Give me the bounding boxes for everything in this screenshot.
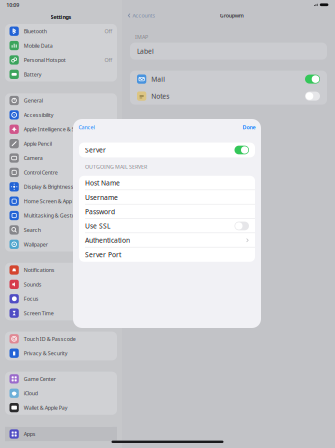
staticText: Camera bbox=[24, 154, 43, 162]
staticText: Username bbox=[85, 193, 118, 202]
staticText: Mobile Data bbox=[24, 42, 53, 49]
staticText: Touch ID & Passcode bbox=[24, 335, 76, 342]
button[interactable]: Multitasking & Gestures bbox=[5, 208, 117, 223]
button[interactable]: Personal Hotspot bbox=[5, 53, 117, 67]
button[interactable]: Touch ID & Passcode bbox=[5, 332, 117, 346]
staticText: Label bbox=[137, 47, 154, 56]
staticText: Focus bbox=[24, 295, 39, 302]
staticText: IMAP bbox=[135, 33, 148, 40]
staticText: Wallet & Apple Pay bbox=[24, 404, 68, 411]
button[interactable]: Notifications bbox=[5, 263, 117, 277]
staticText: Accounts bbox=[132, 12, 155, 19]
staticText: General bbox=[24, 97, 43, 104]
button[interactable]: Sounds bbox=[5, 277, 117, 292]
button[interactable]: Authentication bbox=[79, 233, 255, 247]
staticText: Wallpaper bbox=[24, 241, 48, 248]
button[interactable]: Bluetooth bbox=[5, 24, 117, 38]
button[interactable]: General bbox=[5, 93, 117, 108]
staticText: Mail bbox=[151, 75, 165, 84]
staticText: Password bbox=[85, 207, 115, 216]
staticText: iCloud bbox=[24, 390, 38, 397]
staticText: Privacy & Security bbox=[24, 350, 68, 357]
button[interactable]: Password bbox=[79, 204, 255, 219]
button[interactable]: Apple Pencil bbox=[5, 136, 117, 151]
button[interactable]: Focus bbox=[5, 292, 117, 306]
staticText: Personal Hotspot bbox=[24, 56, 66, 63]
staticText: Off bbox=[104, 56, 112, 63]
button[interactable]: Home Screen & App Library bbox=[5, 194, 117, 208]
button[interactable]: Screen Time bbox=[5, 306, 117, 320]
staticText: Notes bbox=[151, 92, 169, 101]
button[interactable]: Apple Intelligence & Siri bbox=[5, 122, 117, 136]
staticText: OUTGOING MAIL SERVER bbox=[85, 163, 147, 170]
staticText: Settings bbox=[50, 13, 71, 21]
button[interactable]: Game Center bbox=[5, 372, 117, 386]
staticText: Search bbox=[24, 226, 41, 233]
staticText: Multitasking & Gestures bbox=[24, 212, 83, 219]
staticText: Bluetooth bbox=[24, 28, 47, 35]
button[interactable]: Server bbox=[79, 143, 255, 157]
staticText: Home Screen & App Library bbox=[24, 198, 90, 205]
staticText: Battery bbox=[24, 71, 42, 78]
staticText: Accessibility bbox=[24, 111, 54, 118]
staticText: Screen Time bbox=[24, 310, 54, 317]
button[interactable]: Use SSL bbox=[79, 219, 255, 233]
staticText: Sounds bbox=[24, 281, 42, 288]
button[interactable]: Username bbox=[79, 190, 255, 204]
staticText: Apple Intelligence & Siri bbox=[24, 126, 79, 133]
staticText: Display & Brightness bbox=[24, 183, 74, 190]
staticText: Use SSL bbox=[85, 221, 110, 230]
staticText: Server bbox=[85, 146, 106, 154]
button[interactable]: Cancel bbox=[79, 124, 95, 131]
staticText: Server Port bbox=[85, 250, 121, 259]
staticText: Notifications bbox=[24, 266, 55, 273]
button[interactable]: Control Centre bbox=[5, 165, 117, 180]
button[interactable]: Wallpaper bbox=[5, 237, 117, 251]
button[interactable]: Accounts bbox=[128, 9, 157, 22]
button[interactable]: iCloud bbox=[5, 386, 117, 400]
staticText: Apps bbox=[24, 430, 36, 438]
button[interactable]: Done bbox=[242, 124, 255, 131]
button[interactable]: Mobile Data bbox=[5, 38, 117, 53]
staticText: Cancel bbox=[79, 124, 95, 131]
button[interactable]: Apps bbox=[5, 427, 117, 441]
staticText: Host Name bbox=[85, 178, 120, 187]
button[interactable]: Display & Brightness bbox=[5, 180, 117, 194]
button[interactable]: Search bbox=[5, 223, 117, 237]
button[interactable]: Battery bbox=[5, 67, 117, 81]
staticText: Authentication bbox=[85, 236, 130, 245]
button[interactable]: Host Name bbox=[79, 176, 255, 190]
staticText: Game Center bbox=[24, 375, 56, 382]
staticText: Apple Pencil bbox=[24, 140, 52, 147]
staticText: Groupwm bbox=[220, 12, 244, 19]
button[interactable]: Accessibility bbox=[5, 108, 117, 122]
staticText: 10:09 bbox=[6, 1, 19, 9]
button[interactable]: Wallet & Apple Pay bbox=[5, 400, 117, 415]
staticText: Control Centre bbox=[24, 169, 58, 176]
staticText: Off bbox=[104, 28, 112, 35]
button[interactable]: Privacy & Security bbox=[5, 346, 117, 360]
staticText: Done bbox=[242, 124, 255, 131]
button[interactable]: Camera bbox=[5, 151, 117, 165]
button[interactable]: Server Port bbox=[79, 247, 255, 262]
